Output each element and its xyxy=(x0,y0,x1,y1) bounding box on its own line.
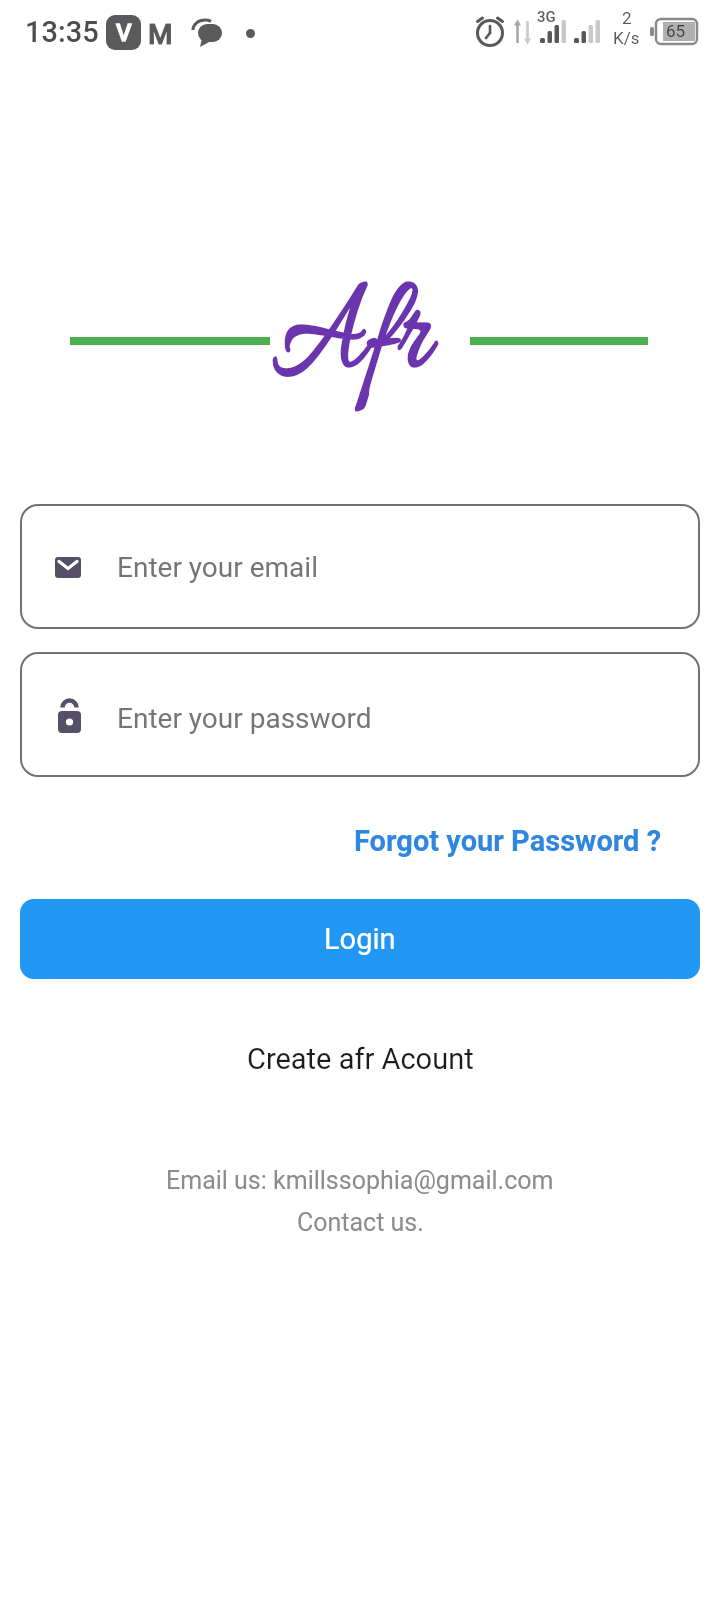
staticText: 65 xyxy=(666,21,686,41)
staticText: Create afr Acount xyxy=(247,1042,474,1076)
button[interactable]: Forgot your Password ? xyxy=(0,824,662,858)
staticText: Enter your email xyxy=(117,551,318,584)
button[interactable]: Contact us. xyxy=(0,1208,720,1237)
staticText: K/s xyxy=(613,28,640,48)
staticText: M xyxy=(148,18,173,51)
staticText: 2 xyxy=(622,8,632,28)
staticText: Afr xyxy=(273,255,430,425)
staticText: V xyxy=(116,19,132,47)
button[interactable]: Enter your email xyxy=(20,504,700,629)
button[interactable]: Enter your password xyxy=(20,652,700,777)
staticText: Enter your password xyxy=(117,702,372,735)
button[interactable]: Create afr Acount xyxy=(0,1042,720,1076)
staticText: Contact us. xyxy=(297,1208,424,1237)
staticText: Email us: kmillssophia@gmail.com xyxy=(166,1166,554,1195)
staticText: Login xyxy=(324,922,396,956)
staticText: 13:35 xyxy=(25,15,99,49)
staticText: Afr xyxy=(273,255,430,425)
staticText: Forgot your Password ? xyxy=(354,824,662,858)
button[interactable]: Login xyxy=(20,899,700,979)
staticText: 3G xyxy=(537,8,556,26)
